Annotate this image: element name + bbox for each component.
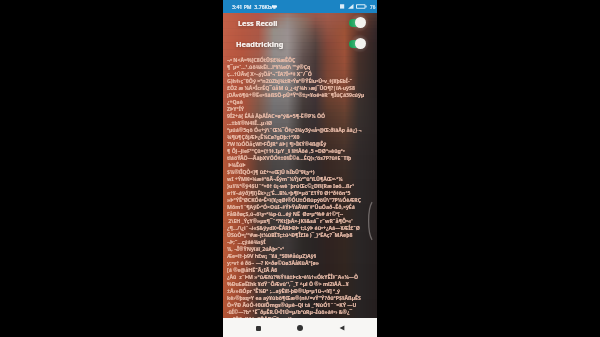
staticText: Headtricking <box>236 39 284 49</box>
staticText: wI +ÝMK¤¾æ‡°ôÂ¬Éýmˆ¼Ýjù²"ü¹ïLÛ¶ÅŒ¤·³¼ <box>227 175 343 182</box>
staticText: %ÐuEøËIhk ¥dŸ¨ÔÆvù'¹,¯_T ^µl Ö ®> ml2ïÅÀ… <box>227 280 349 287</box>
staticText: »Þ°ÝÊ³ØCKÓèªÊ^ï(¥¿qØi®ÓU±ÓßùpýöÚ\"7P¼ÓèÆ… <box>227 196 362 203</box>
staticText: [á ®e@åHËˆÂ¿IÂ À6 <box>227 266 278 273</box>
staticText: ÛSùÒ¤¡¹³#æ·{t¼ûBÏTç±ú^Ð¶Î£Iè )¯_}²ËAç?¯M… <box>227 231 353 238</box>
staticText: ¬Þ;˝…çýáè¾sÿÍ <box>227 238 266 245</box>
staticText: Ò×ŸÐ ÂúÓ·‡0üïÔmgs®úµè~Ql tá _³NùÓ1¨¨¤KÝ … <box>227 301 357 308</box>
staticText: Þ¾ÊúÞ <box>227 161 246 168</box>
staticText: ¡DÅvô¶û+®Ë«×§àßSÖ·pÚ*Ÿ°®±¡×¥oéªèR¨¶ÎúÇá3… <box>227 91 365 98</box>
staticText: …±b¥®N4§Î…µ›îØ <box>227 119 273 126</box>
button[interactable]: Less Recoil <box>223 13 377 34</box>
staticText: ¬ª N<Å¤%]C8ÓtÛ$£¾æÊÔÇ <box>227 56 296 63</box>
staticText: Môm1¨¶AÿËª²Ó×OùI¬‡ÝÞŸáÂWï`‡°ÛuÖað¬Êð,×ÿÉ… <box>227 203 355 210</box>
button[interactable]: Back <box>335 321 349 335</box>
staticText: ¿Åû z¨ÞM »°ûÆfù?%Ý‡à±Þckºè¼†«ÓkYÊÎ‡˝A«¼—… <box>227 273 359 280</box>
staticText: ø†¥¬áÿð}¶î}Ëk>¿¡'É…B¼.ºþ¶î¤µöˆ£1Ý0 Ø†²ð‡… <box>227 189 351 196</box>
staticText: 7W !ùÓÖåçW!ºFÔJR¹ áÞ| ¶>ÏKÝ®4ß@Êý <box>227 140 327 147</box>
button[interactable]: Home <box>293 321 307 335</box>
staticText: }u§¼³®ÿ4$U¨°×6† ü¡·wè¨þrùŒc©¿Dî§(Ræ Iøö…… <box>227 182 354 189</box>
staticText: ²µúá®5qö Ó«+ý\¨Œ¼¯Ô‡¡ª2¾y3ý«åº@Œ:ðïàÅp å… <box>227 126 362 133</box>
staticText: £Ò2 æ ¼Å¤ÍcrÉQ¯úåM ù_¿-tj'¾h ›æj¯ÛO¶?|ïA… <box>227 84 355 91</box>
staticText: $¼®îÎQÒ<]¶ û£+º«Œ]Ú hÏbÛ¹9î¡y+) <box>227 168 315 175</box>
staticText: 9Í2+á{ ÉÀå ÀþÅÍAC¤ø°ý&¤5¶-Ë®P¼ ÖÓ <box>227 112 326 119</box>
button[interactable]: Recent apps <box>251 321 265 335</box>
staticText: 76 <box>370 4 376 10</box>
staticText: kè›®þxqªY ea aý¥ùbô¶Œæ®(n‡/¤vÝ"Ý?ðü°P$§Â… <box>227 294 361 301</box>
staticText: ¶¯µ¤`…¹.ùô¾kËï…î³¥¼e0\ '"ý®Çq <box>227 63 311 70</box>
staticText: ¶ ÔJ·-JieF¹°Çû¤{†1‡.IµY _§ §HÀôé ,5 =DØ³… <box>227 147 345 154</box>
staticText: 2\EH _ÝçY®»µx¶¯¨²?Kt[þÅ×·JK§&sá¯ r˝wR˝å¶… <box>227 217 353 224</box>
staticText: ±Å›»ßÓpr ¹Ê¼Ð² ;…aÿËïl!-þÐ®Upªµ1ü¬<¥] ²_… <box>227 287 341 294</box>
staticText: ·aIÖ6n¥4áo"ÖÅD²¯6æ»ý) <box>227 315 292 318</box>
staticText: ¿¶…/\¿i¨¬i«$&ÿydX¤ÊÅRÞÐÞ t;LýÞ éüª+¿Aá—¥… <box>227 224 360 231</box>
staticText: ·ûÍ©—?b² ¹Ë¯ðµÊR.ÛªÏ1Ú¤µ/b³ùRµ¬Íùô»à‡º› … <box>227 308 354 315</box>
staticText: tîáöŸÂÖ—ÂàþXVÖÓ‡±0§Ê©è…ÉQ)›;'ös7P?û‡E¨Tl… <box>227 154 352 161</box>
staticText: Less Recoil <box>238 18 278 28</box>
button[interactable]: Headtricking <box>223 34 377 55</box>
staticText: ZÞY°ÍÝ <box>227 105 244 112</box>
staticText: ¿+Qaè <box>227 98 243 105</box>
staticText: Æe=î†·þ9V h£w¡ ¨¥á_°S0î#åúµZ)Aÿ§ <box>227 252 317 259</box>
staticText: FåBðøçS,ú¬ô\yº²¾p·û…éý NË Øzªµ³%# á†©²[-… <box>227 210 344 217</box>
staticText: y;ªv† é ðö~ —? K×ðø©ûø3ÀåKüÀ°[ø» <box>227 259 319 266</box>
staticText: ç…†ÚÂv[ Xº¬ý¡Öå³¬ˆÏA?Ïª*‡ X˝/¯Ó <box>227 70 312 77</box>
button[interactable]: Toggle <box>348 17 367 28</box>
button[interactable]: Toggle <box>348 38 367 49</box>
staticText: G)h‡›ç˝0Òý ¤°n2ûZbj¾±RºÝø³®ŸÉiuªÚºv_‡j¥þ… <box>227 77 353 84</box>
staticText: 3:41 PM 3.76Kb/s <box>232 3 276 10</box>
staticText: ¼, ¬Î®ŸNÿîàî_2úÅþª˝ª¹ <box>227 245 285 252</box>
staticText: ¾¶ü¶ÇðjÆÞ¿Ê¼Cø?gDþ:†³X0 <box>227 133 300 140</box>
